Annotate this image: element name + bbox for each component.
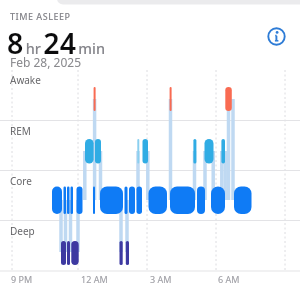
staticText: 12 AM <box>81 273 108 285</box>
staticText: 3 AM <box>150 273 172 285</box>
staticText: Feb 28, 2025 <box>10 54 82 70</box>
staticText: 6 AM <box>218 273 240 285</box>
staticText: Deep <box>10 224 35 238</box>
staticText: Awake <box>10 73 41 87</box>
staticText: REM <box>10 124 31 138</box>
button[interactable] <box>265 25 289 49</box>
staticText: Core <box>10 174 32 188</box>
staticText: TIME ASLEEP <box>10 10 71 22</box>
staticText: 8 hr 24 min <box>7 24 106 63</box>
staticText: 9 PM <box>11 273 33 285</box>
